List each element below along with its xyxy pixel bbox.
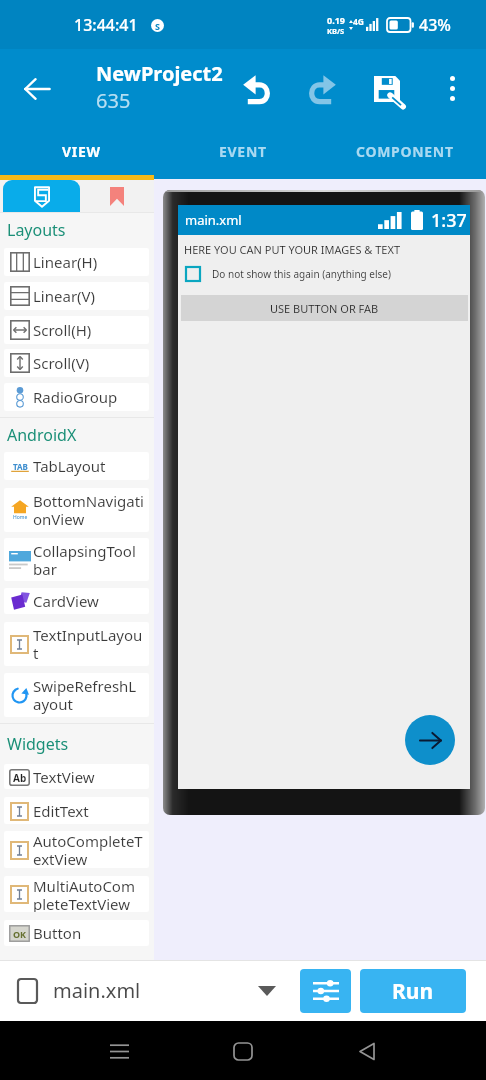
button[interactable]: Back <box>338 1022 396 1080</box>
button[interactable]: MultiAutoCompleteTextView <box>4 876 149 912</box>
button[interactable]: CardView <box>4 588 149 614</box>
button[interactable]: VIEW <box>0 128 162 175</box>
staticText: CardView <box>33 591 144 611</box>
staticText: Do not show this again (anything else) <box>212 267 391 281</box>
staticText: USE BUTTON OR FAB <box>270 301 379 316</box>
staticText: S <box>155 20 160 32</box>
button[interactable]: Redo <box>294 49 350 128</box>
button[interactable]: Scroll(V) <box>4 349 149 377</box>
staticText: TextInputLayout <box>33 625 144 663</box>
button[interactable]: main.xml <box>18 960 280 1021</box>
button[interactable]: EditText <box>4 797 149 824</box>
staticText: 13:44:41 <box>74 14 138 36</box>
button[interactable]: Run <box>360 969 466 1013</box>
button[interactable]: Undo <box>228 49 284 128</box>
button[interactable]: More options <box>429 49 476 128</box>
button[interactable]: Project settings <box>300 969 351 1013</box>
staticText: EditText <box>33 801 144 821</box>
staticText: Run <box>392 977 434 1006</box>
button[interactable]: TextInputLayout <box>4 622 149 666</box>
button[interactable]: TAB <box>4 452 149 480</box>
staticText: TAB <box>13 461 28 472</box>
button[interactable]: Scroll(H) <box>4 316 149 344</box>
button[interactable]: Home <box>4 488 149 532</box>
staticText: Ab <box>13 771 27 785</box>
staticText: VIEW <box>62 142 101 161</box>
staticText: 635 <box>96 87 131 114</box>
button[interactable]: Next <box>405 715 455 765</box>
staticText: 4G <box>353 16 365 28</box>
staticText: AndroidX <box>7 424 77 446</box>
button[interactable]: Linear(V) <box>4 282 149 310</box>
button[interactable]: Palette <box>3 180 80 212</box>
staticText: Home <box>13 514 28 521</box>
button[interactable]: Save <box>359 49 415 128</box>
button[interactable]: Recents <box>90 1022 148 1080</box>
staticText: Button <box>33 923 144 943</box>
staticText: 1:37 <box>431 208 467 233</box>
staticText: BottomNavigationView <box>33 491 144 529</box>
staticText: Linear(H) <box>33 252 144 272</box>
staticText: TextView <box>33 767 144 787</box>
button[interactable]: USE BUTTON OR FAB <box>181 295 468 321</box>
staticText: Scroll(V) <box>33 353 144 373</box>
button[interactable]: Linear(H) <box>4 248 149 276</box>
staticText: Scroll(H) <box>33 320 144 340</box>
staticText: main.xml <box>53 977 141 1004</box>
staticText: OK <box>13 928 27 940</box>
staticText: CollapsingToolbar <box>33 541 144 579</box>
button[interactable]: OK <box>4 920 149 946</box>
staticText: HERE YOU CAN PUT YOUR IMAGES & TEXT <box>184 242 401 257</box>
button[interactable]: RadioGroup <box>4 383 149 411</box>
staticText: RadioGroup <box>33 387 144 407</box>
button[interactable]: EVENT <box>162 128 324 175</box>
button[interactable]: COMPONENT <box>324 128 486 175</box>
button[interactable]: AutoCompleteTextView <box>4 831 149 868</box>
staticText: main.xml <box>185 211 242 229</box>
staticText: SwipeRefreshLayout <box>33 676 144 714</box>
staticText: MultiAutoCompleteTextView <box>33 876 144 912</box>
staticText: Layouts <box>7 219 66 241</box>
staticText: EVENT <box>219 142 267 161</box>
staticText: Linear(V) <box>33 286 144 306</box>
button[interactable]: Favorites <box>80 180 154 212</box>
button[interactable]: CollapsingToolbar <box>4 538 149 581</box>
button[interactable]: Home <box>214 1022 272 1080</box>
button[interactable]: Ab <box>4 764 149 789</box>
staticText: AutoCompleteTextView <box>33 831 144 868</box>
button[interactable]: Back <box>9 49 65 128</box>
staticText: 0.19 <box>327 14 345 26</box>
staticText: TabLayout <box>33 456 144 476</box>
staticText: Widgets <box>7 733 69 755</box>
staticText: 43% <box>419 14 451 36</box>
staticText: KB/S <box>327 26 345 36</box>
button[interactable]: SwipeRefreshLayout <box>4 673 149 717</box>
staticText: NewProject2 <box>96 60 223 87</box>
staticText: COMPONENT <box>356 142 454 161</box>
